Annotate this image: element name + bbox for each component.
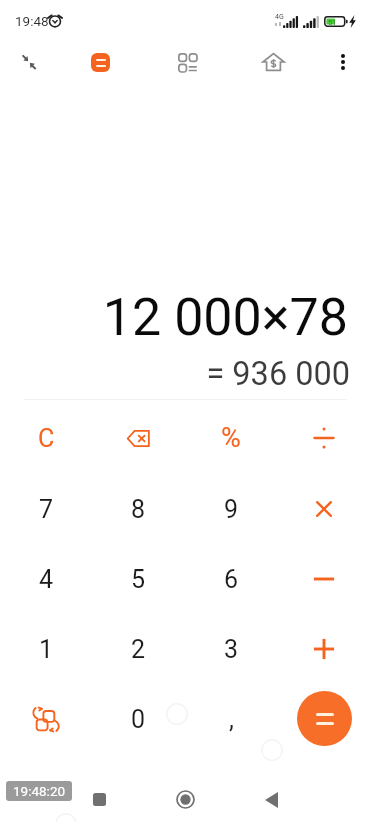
- staticText: 0: [131, 705, 146, 734]
- button[interactable]: Multiply: [278, 474, 370, 544]
- staticText: 9: [224, 495, 239, 524]
- button[interactable]: 4: [0, 544, 92, 614]
- button[interactable]: 6: [185, 544, 277, 614]
- staticText: 19:48:20: [13, 783, 66, 799]
- button[interactable]: 7: [0, 474, 92, 544]
- button[interactable]: Recent apps: [77, 777, 121, 821]
- button[interactable]: Mortgage calculator: [247, 39, 299, 85]
- button[interactable]: 5: [92, 544, 184, 614]
- staticText: 19:48: [15, 13, 49, 29]
- staticText: = 936 000: [0, 355, 350, 393]
- staticText: 2: [131, 635, 146, 664]
- staticText: 3: [224, 635, 239, 664]
- button[interactable]: Add: [278, 614, 370, 684]
- button[interactable]: ,: [185, 684, 277, 754]
- button[interactable]: 0: [92, 684, 184, 754]
- button[interactable]: Equals: [297, 691, 352, 746]
- button[interactable]: Calculator: [74, 39, 126, 85]
- button[interactable]: 2: [92, 614, 184, 684]
- button[interactable]: Subtract: [278, 544, 370, 614]
- staticText: 4G: [275, 13, 284, 21]
- button[interactable]: Collapse: [3, 39, 55, 85]
- button[interactable]: Back: [249, 778, 293, 822]
- button[interactable]: %: [185, 403, 277, 473]
- staticText: 51: [328, 18, 337, 27]
- staticText: 8: [131, 495, 146, 524]
- staticText: ,: [229, 705, 234, 734]
- button[interactable]: Convert: [0, 684, 92, 754]
- button[interactable]: Unit converter: [161, 39, 213, 85]
- staticText: 7: [39, 495, 54, 524]
- staticText: 5: [131, 565, 146, 594]
- staticText: 4: [39, 565, 54, 594]
- staticText: 6: [224, 565, 239, 594]
- staticText: %: [221, 422, 241, 454]
- button[interactable]: More options: [321, 39, 365, 85]
- button[interactable]: Home: [163, 777, 207, 821]
- button[interactable]: Backspace: [92, 403, 184, 473]
- staticText: C: [38, 424, 55, 453]
- button[interactable]: C: [0, 403, 92, 473]
- button[interactable]: 1: [0, 614, 92, 684]
- button[interactable]: 8: [92, 474, 184, 544]
- button[interactable]: 3: [185, 614, 277, 684]
- button[interactable]: Divide: [278, 403, 370, 473]
- staticText: 1: [39, 635, 54, 664]
- button[interactable]: 9: [185, 474, 277, 544]
- staticText: 12 000×78: [0, 287, 348, 348]
